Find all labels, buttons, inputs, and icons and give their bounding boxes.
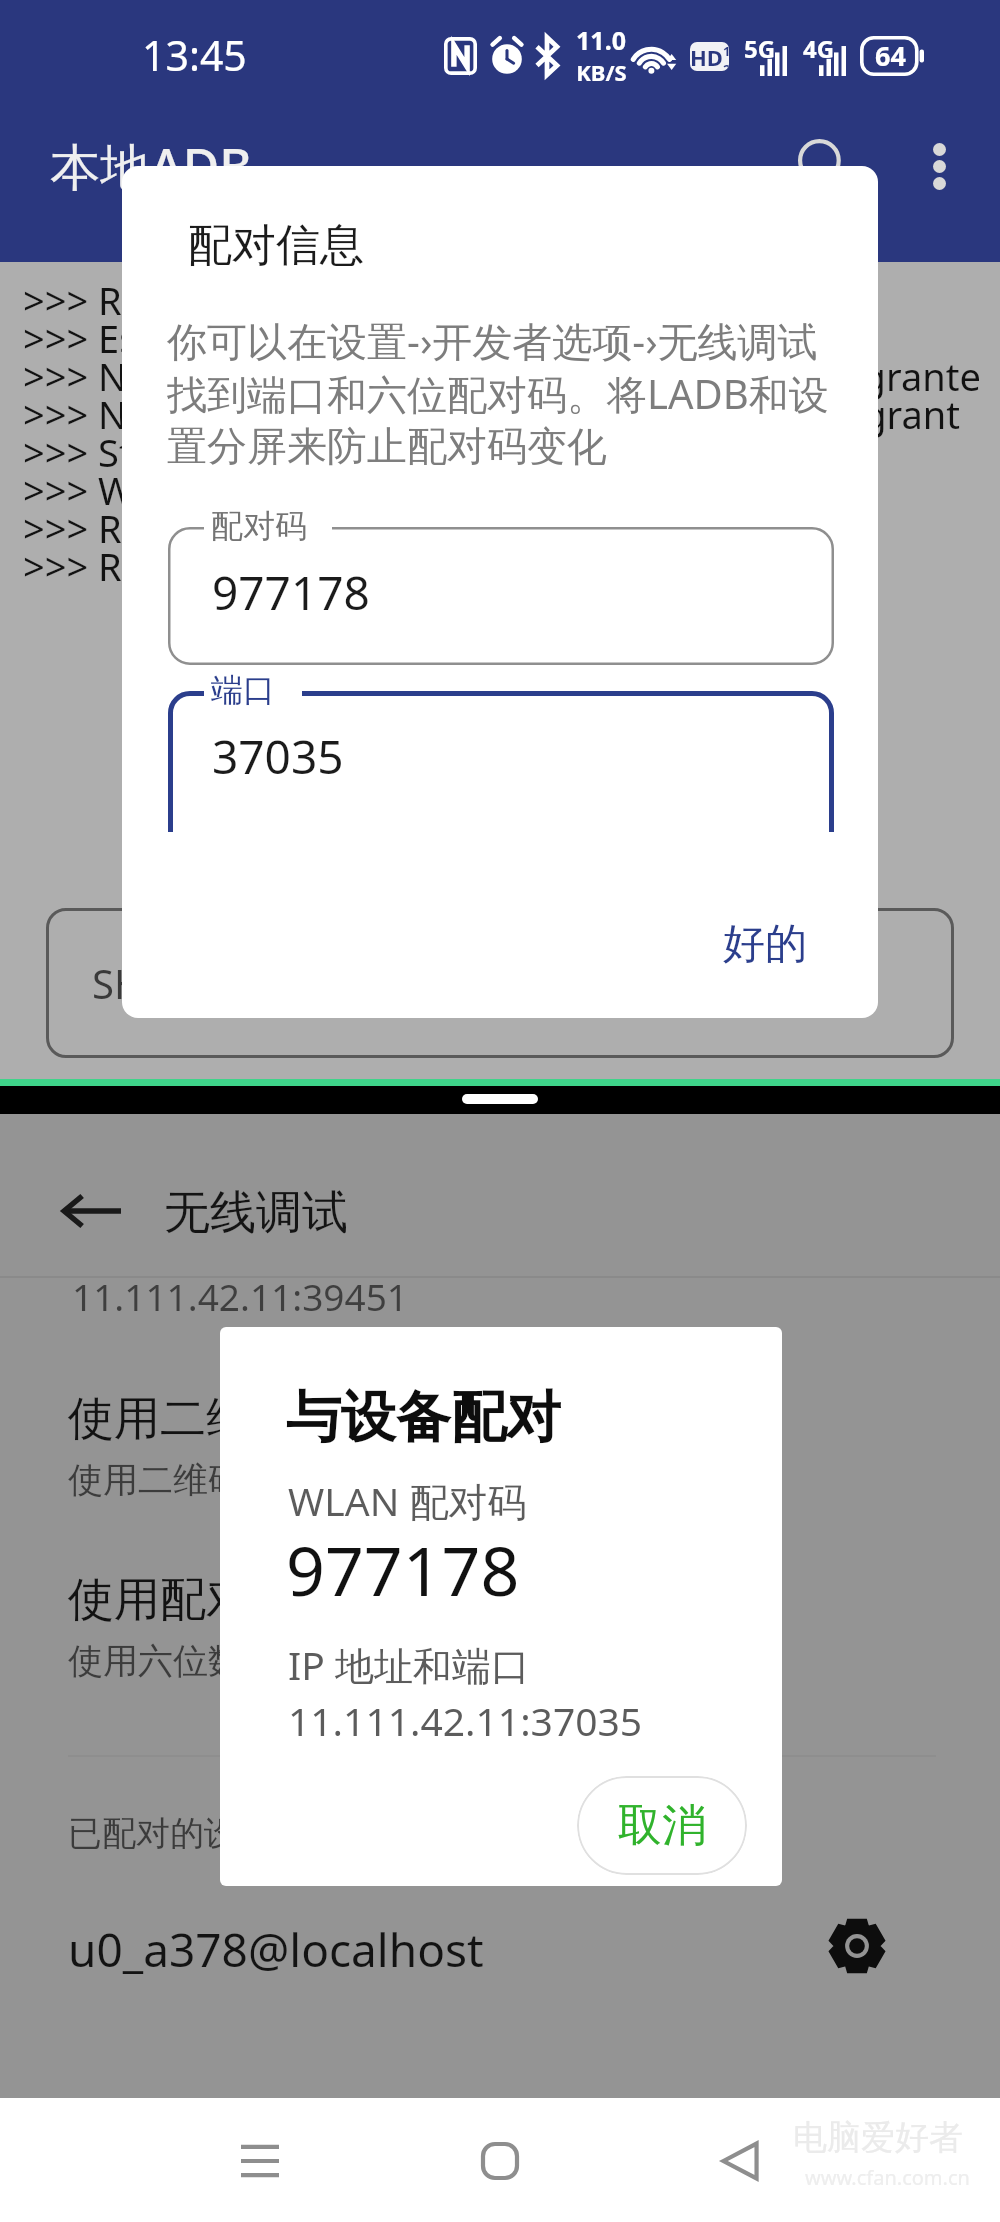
staticText: >>> Ready. bbox=[23, 540, 216, 592]
staticText: 配对码 bbox=[211, 506, 307, 546]
button[interactable] bbox=[0, 1356, 1000, 1506]
staticText: 11.111.42.11:37035 bbox=[288, 1694, 643, 1747]
staticText: IP 地址和端口 bbox=[288, 1638, 530, 1691]
staticText: >>> Wait a moment while LADB connects bbox=[23, 464, 752, 516]
staticText: 与设备配对 bbox=[286, 1383, 561, 1452]
staticText: HD bbox=[690, 42, 723, 71]
staticText: 64 bbox=[875, 37, 906, 74]
staticText: 使用六位数配对码配对新设备 bbox=[68, 1639, 523, 1683]
staticText: 11.0 bbox=[576, 23, 624, 57]
staticText: >>> Start the shell and type a command bbox=[23, 426, 732, 478]
staticText: >>> Note: you may need to restart it if … bbox=[23, 350, 981, 402]
staticText: 977178 bbox=[286, 1523, 520, 1616]
staticText: 1 bbox=[723, 42, 729, 60]
staticText: 13:45 bbox=[142, 27, 247, 83]
button[interactable]: SHELL bbox=[46, 908, 954, 1058]
staticText: 本地ADB bbox=[50, 132, 252, 200]
staticText: 好的 bbox=[723, 918, 807, 971]
staticText: 取消 bbox=[618, 1798, 706, 1853]
staticText: 端口 bbox=[211, 670, 275, 710]
button[interactable]: Home bbox=[445, 2106, 555, 2216]
button[interactable]: Device settings bbox=[818, 1907, 896, 1985]
staticText: 使用二维码扫描器配对新设备 bbox=[68, 1458, 523, 1502]
button[interactable] bbox=[0, 1899, 1000, 1999]
staticText: 5G bbox=[744, 32, 776, 65]
button[interactable]: Search bbox=[777, 118, 873, 214]
staticText: 37035 bbox=[212, 725, 344, 788]
staticText: 你可以在设置-›开发者选项-›无线调试找到端口和六位配对码。将LADB和设置分屏… bbox=[167, 313, 843, 472]
staticText: 无线调试 bbox=[164, 1184, 348, 1242]
staticText: >>> Remember the pairing code changes bbox=[23, 502, 757, 554]
staticText: 配对信息 bbox=[188, 218, 364, 273]
staticText: WLAN 配对码 bbox=[288, 1474, 527, 1527]
staticText: www.cfan.com.cn bbox=[805, 2164, 970, 2191]
staticText: KB/S bbox=[576, 57, 624, 87]
staticText: 11.111.42.11:39451 bbox=[72, 1271, 408, 1321]
button[interactable]: More options bbox=[891, 118, 987, 214]
staticText: 使用配对码配对设备 bbox=[68, 1571, 482, 1629]
staticText: 电脑爱好者 bbox=[793, 2116, 963, 2159]
staticText: 使用二维码配对设备 bbox=[68, 1390, 482, 1448]
button[interactable]: Recent apps bbox=[205, 2106, 315, 2216]
staticText: >>> Note: adb pairing breaks when it is … bbox=[23, 388, 961, 440]
staticText: 已配对的设备 bbox=[68, 1812, 272, 1855]
button[interactable] bbox=[0, 1537, 1000, 1687]
staticText: SHELL bbox=[92, 956, 208, 1010]
button[interactable]: Back bbox=[685, 2106, 795, 2216]
button[interactable]: Back bbox=[53, 1172, 131, 1250]
staticText: 2 bbox=[723, 60, 729, 71]
staticText: u0_a378@localhost bbox=[68, 1918, 484, 1981]
staticText: >>> Run the commands you need on the dev… bbox=[23, 274, 869, 326]
staticText: 4G bbox=[803, 32, 835, 65]
button[interactable]: 取消 bbox=[577, 1776, 747, 1875]
staticText: 977178 bbox=[212, 561, 370, 624]
staticText: >>> Establish connection by pairing over… bbox=[23, 312, 827, 364]
button[interactable]: 好的 bbox=[692, 904, 838, 984]
